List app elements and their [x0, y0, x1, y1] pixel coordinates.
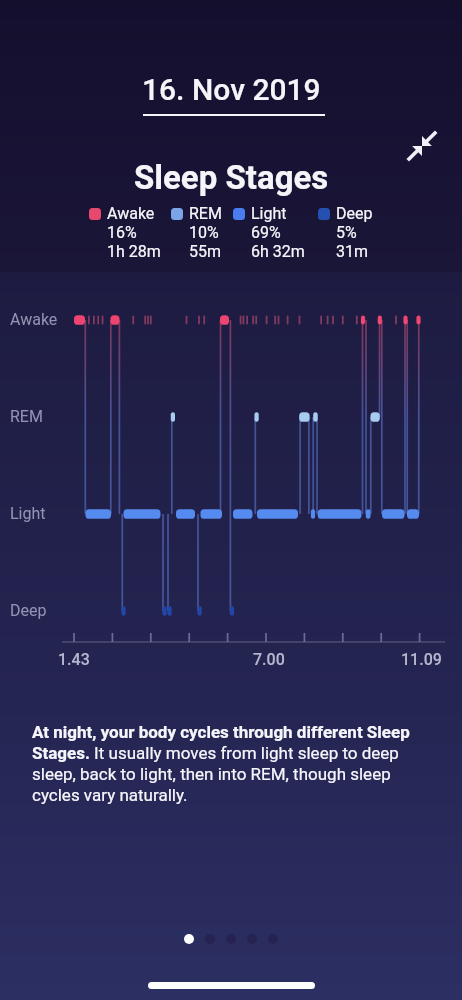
staticText: 10% [189, 223, 219, 242]
staticText: Light [10, 504, 46, 523]
button[interactable]: Page 2 [205, 934, 215, 944]
staticText: Deep [10, 601, 47, 620]
staticText: 31m [336, 242, 369, 261]
staticText: At night, your body cycles through diffe… [32, 722, 434, 805]
staticText: Deep [336, 204, 373, 223]
staticText: Awake [107, 204, 155, 223]
staticText: 1h 28m [107, 242, 161, 261]
staticText: 11.09 [401, 650, 442, 669]
button[interactable]: Page 3 [226, 934, 236, 944]
staticText: 16% [107, 223, 137, 242]
staticText: 55m [189, 242, 222, 261]
staticText: 69% [251, 223, 281, 242]
staticText: REM [189, 204, 222, 223]
button[interactable]: Collapse [400, 124, 444, 168]
staticText: REM [10, 407, 43, 426]
button[interactable]: Page 4 [247, 934, 257, 944]
staticText: Sleep Stages [134, 158, 329, 197]
staticText: 6h 32m [251, 242, 305, 261]
staticText: 7.00 [253, 650, 285, 669]
staticText: 16. Nov 2019 [142, 72, 321, 107]
button[interactable]: Page 1 [184, 934, 194, 944]
staticText: Awake [10, 310, 58, 329]
staticText: Light [251, 204, 287, 223]
button[interactable]: Page 5 [268, 934, 278, 944]
staticText: 1.43 [58, 650, 90, 669]
staticText: 5% [336, 223, 357, 242]
